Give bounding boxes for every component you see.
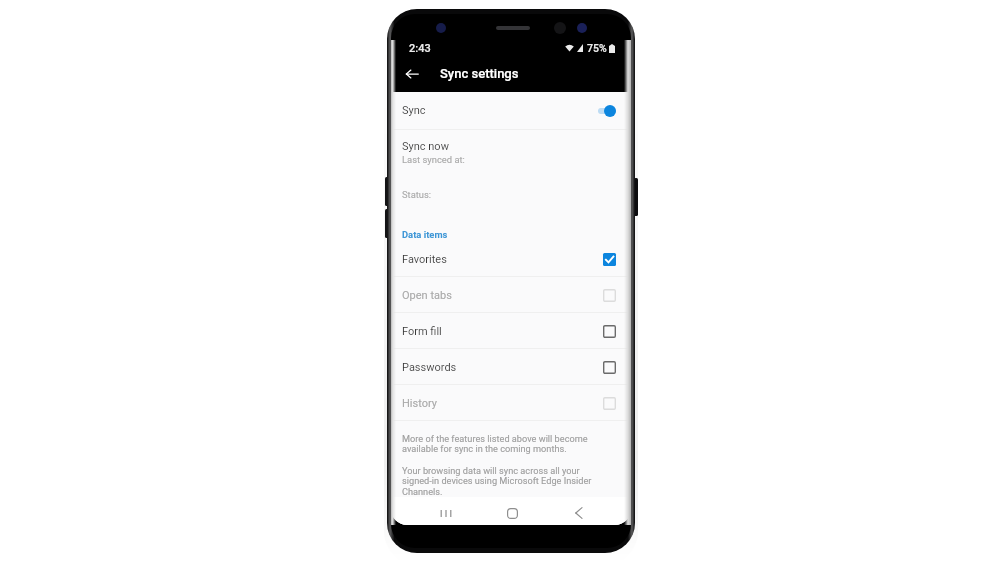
staticText: Sync now (402, 140, 449, 153)
staticText: Form fill (402, 325, 442, 338)
staticText: 75% (587, 42, 607, 54)
button[interactable]: Form fill (391, 313, 631, 349)
staticText: More of the features listed above will b… (402, 433, 598, 455)
staticText: Open tabs (402, 289, 452, 302)
staticText: Sync settings (440, 66, 519, 81)
button[interactable]: History (391, 385, 631, 421)
button[interactable]: Open tabs (391, 277, 631, 313)
button[interactable]: Sync now (391, 130, 631, 238)
staticText: Favorites (402, 253, 447, 266)
staticText: History (402, 397, 437, 410)
staticText: Last synced at: (402, 154, 465, 165)
button[interactable]: Back (565, 500, 591, 525)
button[interactable]: Passwords (391, 349, 631, 385)
staticText: Status: (402, 189, 432, 200)
staticText: Your browsing data will sync across all … (402, 465, 598, 498)
staticText: 2:43 (409, 42, 431, 55)
button[interactable]: Back (401, 63, 423, 85)
staticText: Data items (402, 229, 448, 240)
button[interactable]: Recent apps (433, 500, 459, 525)
staticText: Passwords (402, 361, 457, 374)
button[interactable]: Favorites (391, 241, 631, 277)
button[interactable]: Sync (391, 92, 631, 129)
button[interactable]: Home (499, 500, 525, 525)
staticText: Sync (402, 104, 426, 117)
button[interactable]: Sync toggle (598, 105, 616, 117)
